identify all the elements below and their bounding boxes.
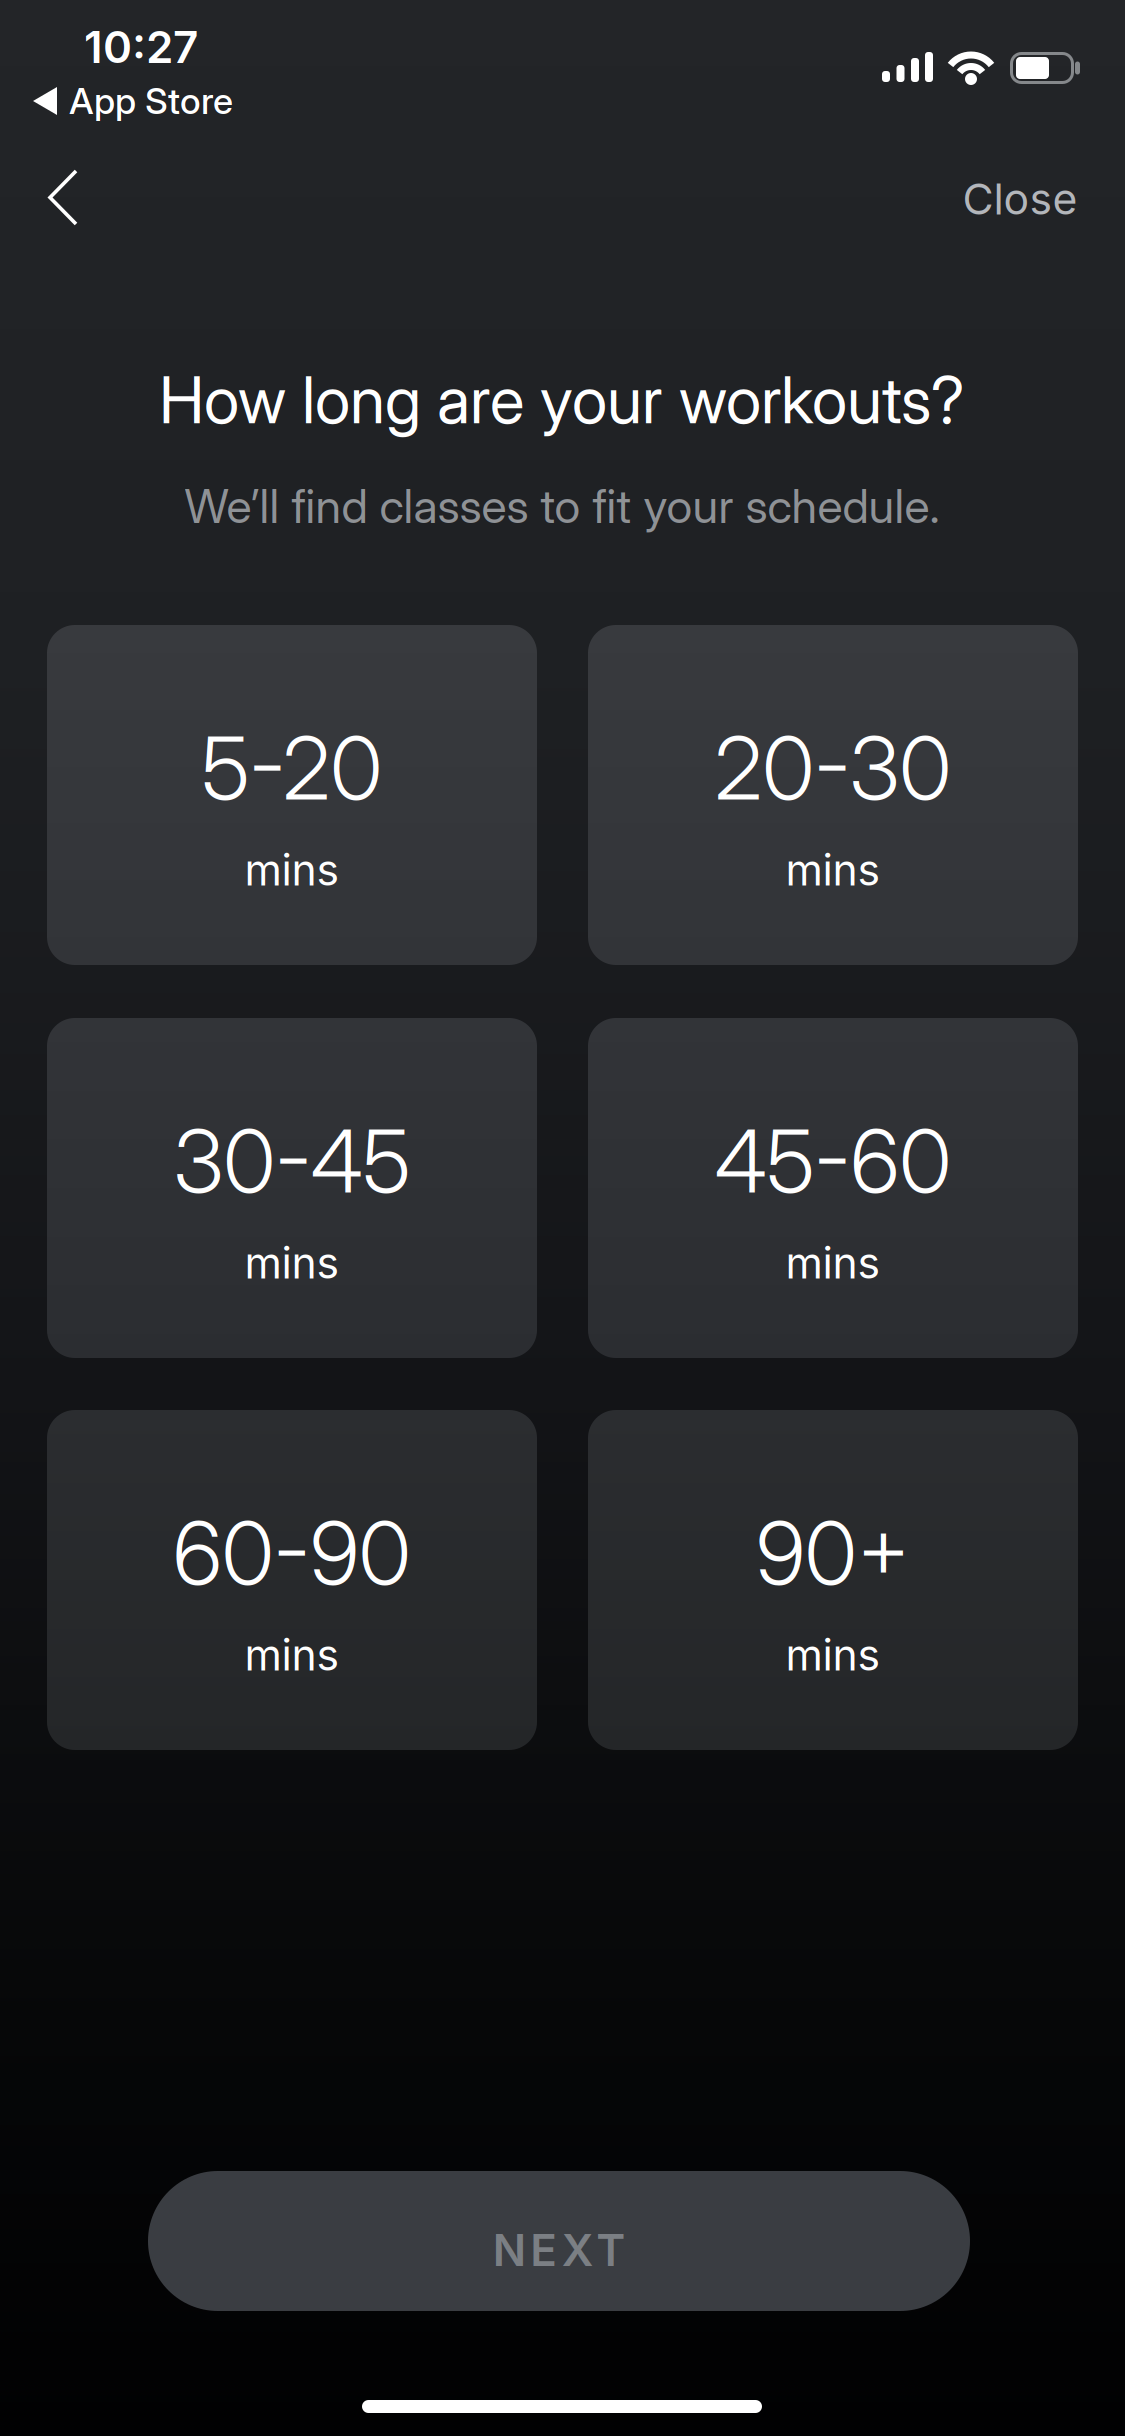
staticText: NEXT [493, 2224, 625, 2276]
staticText: mins [785, 845, 880, 895]
button[interactable]: 20-30 [588, 625, 1078, 965]
staticText: 45-60 [714, 1109, 951, 1213]
button[interactable]: 45-60 [588, 1018, 1078, 1358]
staticText: mins [785, 1630, 880, 1680]
staticText: App Store [69, 80, 233, 122]
button[interactable]: 60-90 [47, 1410, 537, 1750]
staticText: Close [962, 174, 1077, 224]
staticText: mins [244, 1630, 339, 1680]
button[interactable]: 5-20 [47, 625, 537, 965]
button[interactable]: App Store [33, 80, 233, 122]
staticText: 20-30 [714, 716, 951, 820]
staticText: 10:27 [84, 21, 198, 73]
staticText: mins [785, 1238, 880, 1288]
button[interactable]: 30-45 [47, 1018, 537, 1358]
staticText: 60-90 [173, 1501, 411, 1605]
staticText: 90+ [756, 1501, 910, 1605]
button[interactable]: 90+ [588, 1410, 1078, 1750]
button[interactable]: Back [48, 169, 78, 226]
staticText: 30-45 [173, 1109, 410, 1213]
button[interactable]: Close [962, 174, 1077, 224]
staticText: 5-20 [201, 716, 382, 820]
button[interactable]: NEXT [148, 2171, 970, 2311]
staticText: mins [244, 1238, 339, 1288]
staticText: How long are your workouts? [159, 361, 965, 439]
staticText: mins [244, 845, 339, 895]
staticText: We’ll find classes to fit your schedule. [184, 478, 939, 534]
